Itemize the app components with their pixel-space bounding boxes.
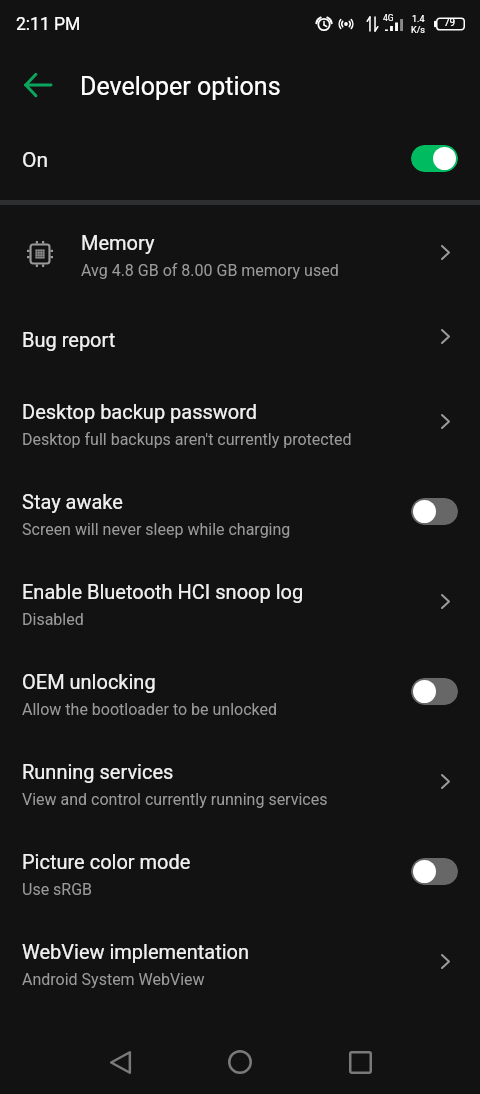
button[interactable]: OEM unlocking (0, 648, 480, 738)
staticText: View and control currently running servi… (22, 790, 328, 809)
staticText: Developer options (80, 72, 281, 101)
button[interactable]: Stay awake, off (411, 498, 458, 525)
staticText: Disabled (22, 610, 84, 629)
staticText: On (22, 148, 49, 173)
button[interactable]: Desktop backup password (0, 378, 480, 468)
staticText: Desktop full backups aren't currently pr… (22, 430, 352, 449)
staticText: 79 (444, 17, 456, 29)
staticText: Android System WebView (22, 970, 205, 989)
staticText: Screen will never sleep while charging (22, 520, 291, 539)
button[interactable]: Picture color mode (0, 828, 480, 918)
button[interactable]: OEM unlocking, off (411, 678, 458, 705)
staticText: 1.4 (412, 14, 425, 25)
staticText: K/s (411, 25, 426, 36)
button[interactable]: On (0, 121, 480, 200)
button[interactable]: Picture color mode, off (411, 858, 458, 885)
staticText: Stay awake (22, 490, 123, 513)
staticText: Memory (81, 231, 155, 254)
staticText: Use sRGB (22, 880, 93, 899)
button[interactable]: Bug report (0, 299, 480, 378)
button[interactable]: Running services (0, 738, 480, 828)
staticText: Bug report (22, 328, 116, 351)
staticText: Enable Bluetooth HCI snoop log (22, 580, 304, 603)
button[interactable]: Memory (0, 209, 480, 299)
staticText: WebView implementation (22, 940, 250, 963)
button[interactable]: Stay awake (0, 468, 480, 558)
button[interactable]: Back (60, 1030, 180, 1094)
button[interactable]: WebView implementation (0, 918, 480, 1008)
button[interactable]: Enable Bluetooth HCI snoop log (0, 558, 480, 648)
staticText: 2:11 PM (16, 14, 81, 35)
button[interactable]: Recent apps (300, 1030, 420, 1094)
button[interactable]: Navigate up (14, 61, 62, 109)
staticText: Avg 4.8 GB of 8.00 GB memory used (81, 261, 339, 280)
staticText: OEM unlocking (22, 670, 156, 693)
staticText: 4G (383, 13, 394, 23)
staticText: Allow the bootloader to be unlocked (22, 700, 278, 719)
button[interactable]: Developer options, on (411, 145, 458, 172)
staticText: Picture color mode (22, 850, 191, 873)
button[interactable]: Home (180, 1030, 300, 1094)
staticText: Desktop backup password (22, 400, 258, 423)
staticText: Running services (22, 760, 174, 783)
